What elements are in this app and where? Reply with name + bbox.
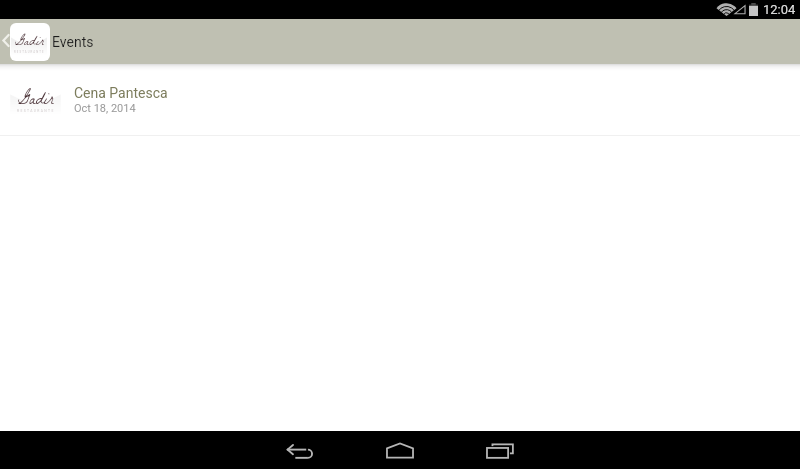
staticText: Events (52, 34, 94, 50)
staticText: RESTAURANTE (17, 109, 55, 113)
staticText: 12:04 (763, 2, 796, 17)
button[interactable]: Gadir (0, 19, 800, 64)
staticText: Oct 18, 2014 (74, 102, 136, 115)
button[interactable]: Home (386, 431, 414, 469)
staticText: Gadir (15, 31, 44, 54)
button[interactable]: Back (287, 431, 313, 469)
staticText: RESTAURANTE (14, 50, 45, 53)
staticText: Gadir (18, 87, 54, 114)
staticText: Cena Pantesca (74, 85, 168, 101)
button[interactable]: Recent apps (486, 431, 514, 469)
button[interactable]: Gadir (0, 67, 800, 135)
